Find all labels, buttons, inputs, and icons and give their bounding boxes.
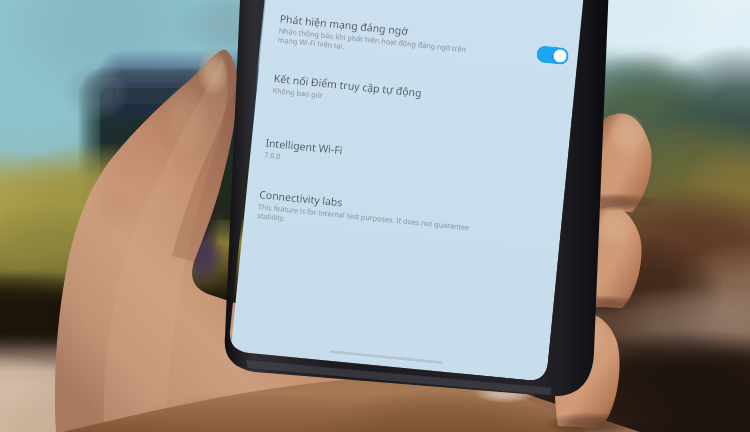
staticText: Không bao giờ [272, 85, 323, 100]
staticText: 7.0.0 [264, 150, 282, 161]
staticText: Phát hiện mạng đáng ngờ [279, 11, 409, 38]
button[interactable]: Connectivity labs [256, 175, 554, 259]
button[interactable]: Intelligent Wi-Fi [263, 124, 559, 199]
staticText: Connectivity labs [259, 187, 344, 210]
button[interactable]: Toggle suspicious network detection [536, 45, 569, 65]
button[interactable]: Phát hiện mạng đáng ngờ [276, 0, 571, 83]
staticText: Intelligent Wi-Fi [265, 136, 344, 157]
staticText: Kết nối Điểm truy cập tự động [273, 71, 423, 100]
staticText: This feature is for internal test purpos… [257, 201, 470, 241]
staticText: Nhận thông báo khi phát hiện hoạt động đ… [277, 25, 467, 63]
button[interactable]: Kết nối Điểm truy cập tự động [271, 59, 565, 134]
